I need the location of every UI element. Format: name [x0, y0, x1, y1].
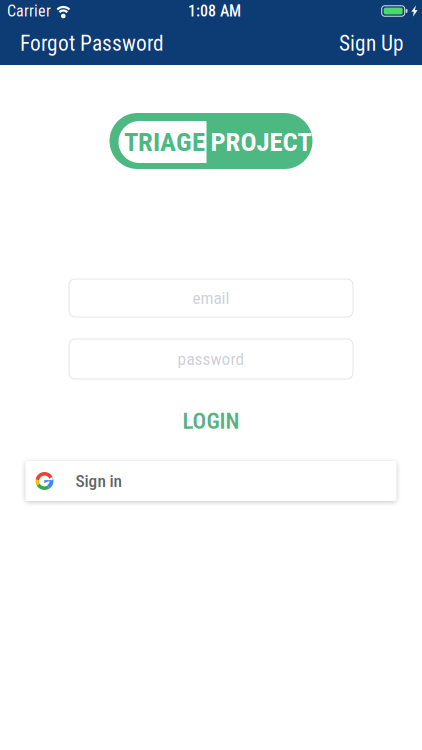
- staticText: email: [192, 288, 229, 308]
- staticText: Sign Up: [339, 31, 404, 56]
- staticText: 1:08 AM: [188, 2, 241, 20]
- staticText: LOGIN: [182, 408, 239, 434]
- staticText: password: [177, 349, 244, 369]
- staticText: TRIAGE: [124, 126, 205, 158]
- button[interactable]: Sign in: [25, 461, 396, 501]
- button[interactable]: Sign Up: [327, 22, 422, 64]
- staticText: PROJECT: [210, 126, 311, 158]
- staticText: Sign in: [75, 471, 121, 491]
- button[interactable]: Forgot Password: [0, 22, 176, 64]
- button[interactable]: LOGIN: [151, 406, 271, 436]
- staticText: Forgot Password: [20, 31, 164, 56]
- staticText: Carrier: [7, 2, 51, 20]
